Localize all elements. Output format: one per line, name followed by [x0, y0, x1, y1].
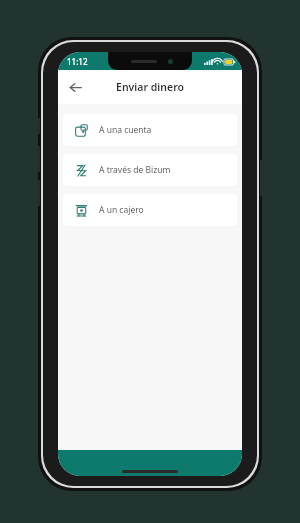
button[interactable]: Back — [62, 74, 88, 100]
staticText: Enviar dinero — [116, 80, 184, 94]
staticText: 11:12 — [67, 56, 88, 67]
button[interactable]: A una cuenta — [63, 114, 237, 146]
staticText: A través de Bizum — [99, 164, 171, 176]
button[interactable]: A un cajero — [63, 194, 237, 226]
staticText: A una cuenta — [99, 124, 152, 136]
button[interactable]: A través de Bizum — [63, 154, 237, 186]
staticText: A un cajero — [99, 204, 144, 216]
